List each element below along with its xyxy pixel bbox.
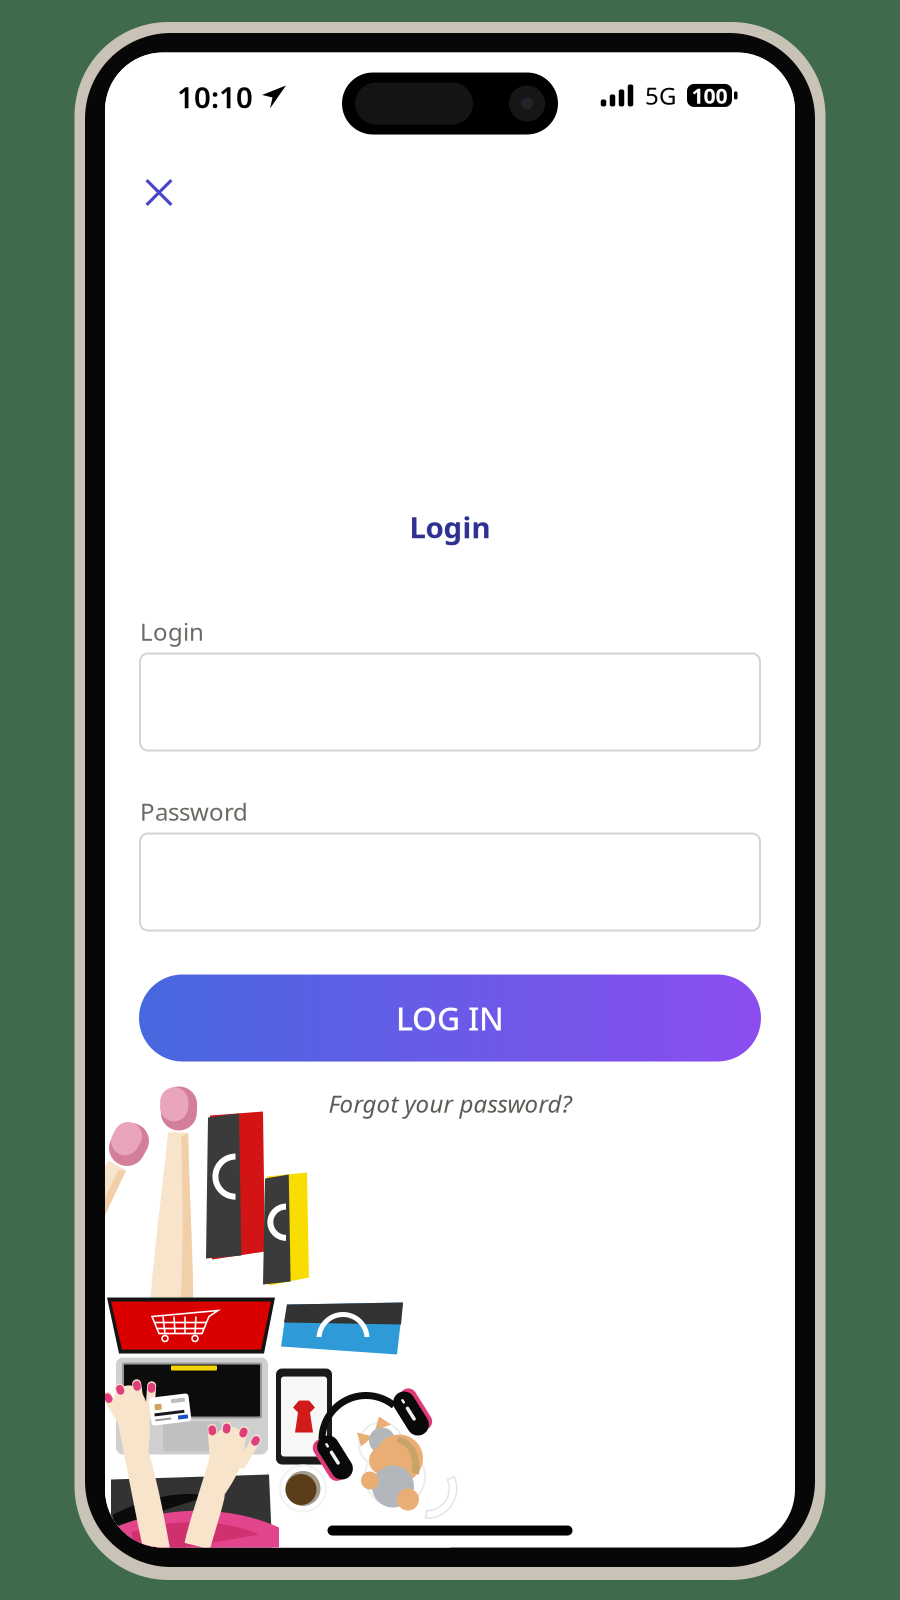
staticText: 100 xyxy=(691,81,727,110)
staticText: Password xyxy=(140,795,248,827)
button[interactable]: LOG IN xyxy=(139,974,761,1061)
staticText: Login xyxy=(409,507,490,546)
button[interactable]: Forgot your password? xyxy=(140,1078,760,1128)
staticText: LOG IN xyxy=(396,997,504,1039)
button[interactable]: Close xyxy=(125,158,193,226)
staticText: Login xyxy=(140,615,204,647)
staticText: 5G xyxy=(645,79,676,111)
staticText: Forgot your password? xyxy=(328,1088,571,1119)
staticText: 10:10 xyxy=(177,77,253,116)
